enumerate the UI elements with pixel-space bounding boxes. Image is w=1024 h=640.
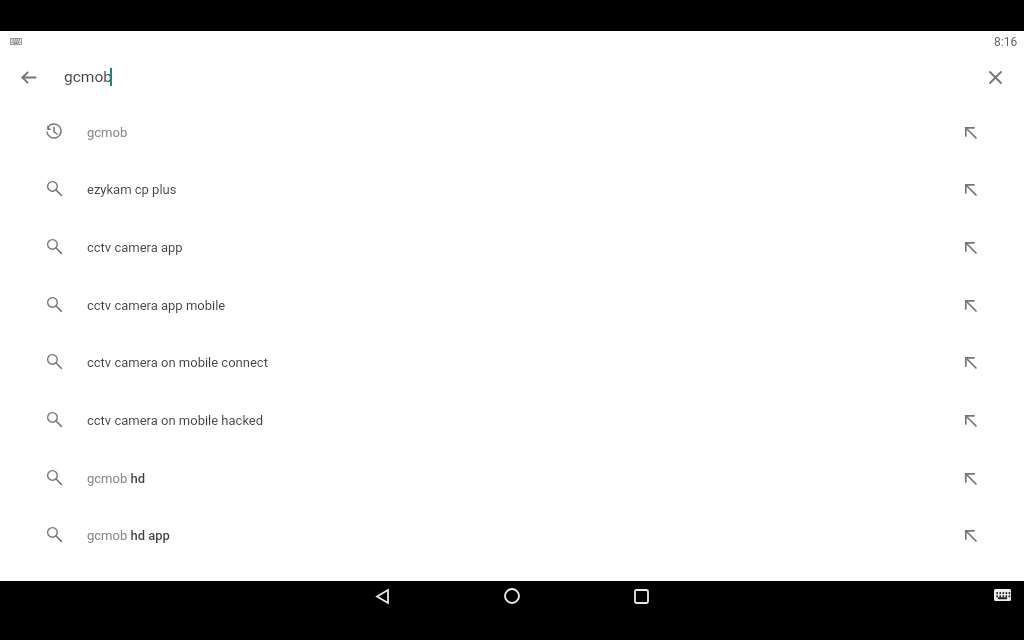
staticText: cctv camera on mobile connect xyxy=(87,355,268,370)
staticText: gcmob hd app xyxy=(87,528,170,543)
button[interactable]: gcmob hd app xyxy=(0,506,1024,564)
button[interactable]: Insert suggestion xyxy=(950,515,990,555)
staticText: cctv camera on mobile hacked xyxy=(87,413,264,428)
button[interactable]: Insert suggestion xyxy=(950,227,990,267)
button[interactable]: Home xyxy=(486,581,538,611)
button[interactable]: gcmob xyxy=(0,103,1024,161)
button[interactable]: Back xyxy=(0,53,58,101)
button[interactable]: Insert suggestion xyxy=(950,400,990,440)
button[interactable]: ezykam cp plus xyxy=(0,160,1024,218)
button[interactable]: Insert suggestion xyxy=(950,458,990,498)
button[interactable]: cctv camera on mobile hacked xyxy=(0,391,1024,449)
button[interactable]: Insert suggestion xyxy=(950,285,990,325)
button[interactable]: gcmob hd xyxy=(0,449,1024,507)
button[interactable]: Keyboard xyxy=(993,588,1011,602)
staticText: ezykam cp plus xyxy=(87,182,177,197)
staticText: gcmob hd xyxy=(87,471,146,486)
button[interactable]: Insert suggestion xyxy=(950,342,990,382)
staticText: gcmob xyxy=(87,125,128,140)
staticText: gcmob xyxy=(64,68,112,86)
button[interactable]: cctv camera on mobile connect xyxy=(0,333,1024,391)
staticText: 8:16 xyxy=(994,35,1018,49)
button[interactable]: cctv camera app xyxy=(0,218,1024,276)
staticText: cctv camera app mobile xyxy=(87,298,226,313)
button[interactable]: Clear xyxy=(971,53,1019,101)
button[interactable]: Recents xyxy=(615,581,667,611)
staticText: cctv camera app xyxy=(87,240,183,255)
button[interactable]: Insert suggestion xyxy=(950,112,990,152)
button[interactable]: Back xyxy=(356,581,408,611)
button[interactable]: Insert suggestion xyxy=(950,169,990,209)
button[interactable]: cctv camera app mobile xyxy=(0,276,1024,334)
